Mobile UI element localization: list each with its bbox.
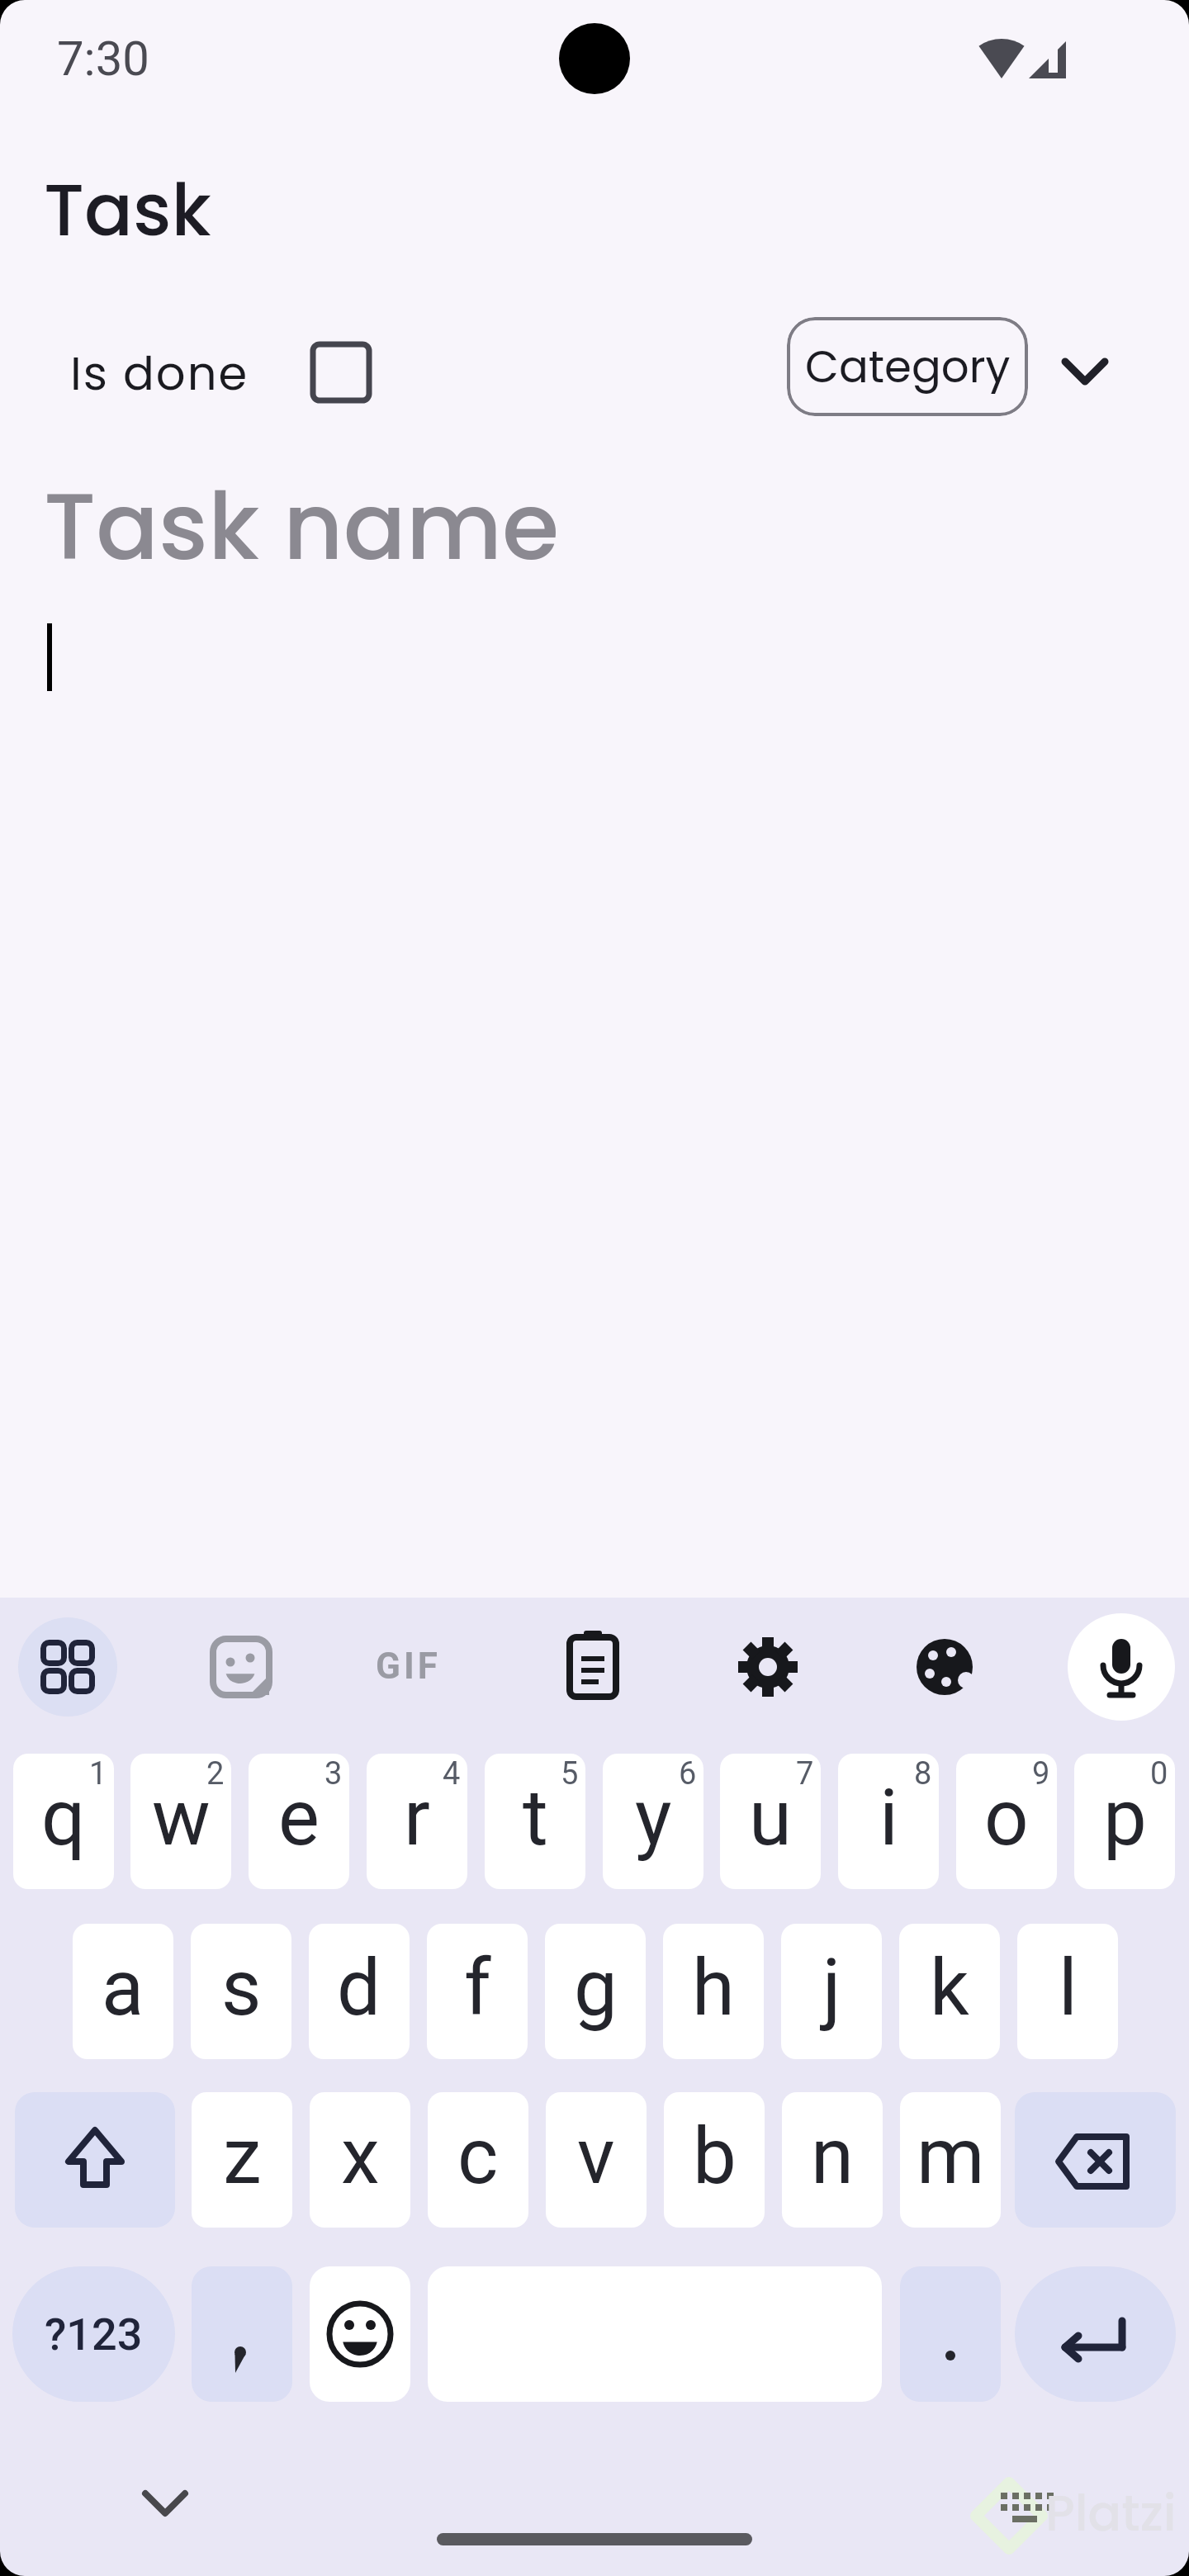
staticText: l [1059,1943,1078,2034]
staticText: n [811,2111,854,2202]
staticText: 2 [206,1755,225,1792]
staticText: Task [44,160,211,261]
staticText: 9 [1032,1755,1050,1792]
button[interactable] [33,450,1156,714]
staticText: 1 [89,1755,107,1792]
button[interactable]: t [485,1754,585,1889]
button[interactable]: x [310,2092,410,2228]
button[interactable] [132,2477,198,2526]
staticText: Is done [70,341,249,405]
button[interactable]: v [546,2092,647,2228]
button[interactable] [1057,351,1115,392]
button[interactable] [1068,1613,1175,1721]
button[interactable]: e [249,1754,349,1889]
staticText: k [930,1943,969,2034]
button[interactable]: d [309,1924,410,2059]
staticText: Task name [44,462,560,591]
staticText: h [692,1943,735,2034]
button[interactable] [192,2266,292,2402]
button[interactable]: n [782,2092,883,2228]
staticText: j [822,1943,841,2034]
staticText: r [404,1773,430,1863]
staticText: 7:30 [57,31,149,87]
button[interactable] [365,1617,464,1717]
staticText: d [337,1943,381,2034]
button[interactable]: Is done [58,334,380,410]
button[interactable]: k [899,1924,1000,2059]
staticText: w [152,1773,211,1863]
staticText: f [464,1943,491,2034]
staticText: 8 [914,1755,932,1792]
staticText: e [278,1773,320,1863]
staticText: o [984,1773,1029,1863]
staticText: y [635,1773,672,1863]
staticText: a [102,1943,144,2034]
staticText: 3 [324,1755,343,1792]
staticText: 4 [443,1755,461,1792]
staticText: g [574,1943,618,2034]
staticText: GIF [376,1645,441,1688]
button[interactable]: f [427,1924,528,2059]
button[interactable] [543,1617,642,1717]
staticText: Category [805,336,1011,397]
button[interactable]: w [130,1754,231,1889]
staticText: x [341,2111,380,2202]
staticText: c [457,2111,499,2202]
button[interactable]: u [720,1754,821,1889]
button[interactable]: ?123 [12,2266,175,2402]
button[interactable] [718,1617,817,1717]
staticText: s [221,1943,262,2034]
staticText: 5 [561,1755,579,1792]
button[interactable] [18,1617,117,1717]
button[interactable] [15,2092,175,2228]
button[interactable]: a [73,1924,173,2059]
button[interactable]: l [1017,1924,1118,2059]
button[interactable]: q [13,1754,114,1889]
button[interactable]: Category [787,317,1028,416]
staticText: Platzi [1045,2479,1177,2548]
button[interactable]: o [956,1754,1057,1889]
staticText: 6 [679,1755,697,1792]
staticText: v [577,2111,615,2202]
staticText: 0 [1150,1755,1168,1792]
staticText: b [693,2111,737,2202]
staticText: t [523,1773,548,1863]
button[interactable] [1015,2266,1176,2402]
button[interactable]: z [192,2092,292,2228]
button[interactable]: h [663,1924,764,2059]
staticText: u [749,1773,792,1863]
button[interactable]: g [545,1924,646,2059]
button[interactable] [900,2266,1001,2402]
button[interactable]: m [900,2092,1001,2228]
button[interactable]: b [664,2092,765,2228]
staticText: m [917,2111,985,2202]
button[interactable]: p [1074,1754,1175,1889]
button[interactable]: j [781,1924,882,2059]
button[interactable]: s [191,1924,291,2059]
staticText: q [41,1773,86,1863]
staticText: ?123 [45,2308,143,2361]
button[interactable]: i [838,1754,939,1889]
button[interactable] [895,1617,994,1717]
button[interactable] [1015,2092,1176,2228]
button[interactable]: y [603,1754,703,1889]
staticText: p [1103,1773,1147,1863]
staticText: z [223,2111,262,2202]
staticText: i [879,1773,898,1863]
button[interactable] [310,2266,410,2402]
button[interactable] [192,1617,291,1717]
button[interactable]: r [367,1754,467,1889]
staticText: 7 [796,1755,814,1792]
button[interactable]: c [428,2092,528,2228]
